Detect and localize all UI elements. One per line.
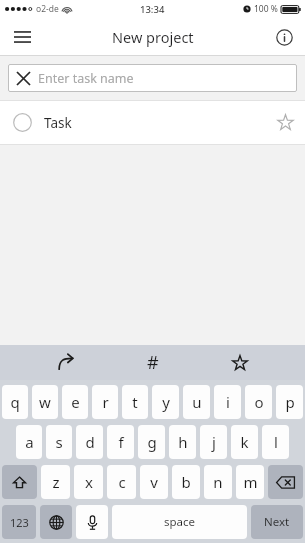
staticText: k — [240, 432, 249, 452]
button[interactable]: i — [214, 385, 241, 419]
button[interactable]: t — [122, 385, 148, 419]
staticText: i — [226, 392, 230, 412]
button[interactable]: u — [183, 385, 210, 419]
staticText: Next — [264, 514, 290, 530]
button[interactable]: d — [76, 425, 103, 459]
staticText: a — [25, 432, 34, 452]
staticText: space — [164, 514, 196, 530]
button[interactable]: Info — [263, 18, 305, 56]
staticText: r — [102, 392, 109, 412]
staticText: p — [285, 392, 295, 412]
button[interactable]: Change keyboard — [40, 505, 72, 539]
button[interactable]: Tag — [109, 345, 196, 380]
button[interactable]: l — [262, 425, 289, 459]
button[interactable]: y — [152, 385, 179, 419]
button[interactable]: e — [62, 385, 88, 419]
staticText: 13:34 — [140, 3, 165, 16]
staticText: n — [213, 472, 223, 492]
staticText: x — [85, 472, 93, 492]
staticText: h — [178, 432, 188, 452]
staticText: s — [55, 432, 63, 452]
staticText: o — [254, 392, 264, 412]
button[interactable]: m — [236, 465, 264, 499]
staticText: b — [181, 472, 191, 492]
staticText: l — [274, 432, 278, 452]
staticText: o2-de — [36, 3, 59, 15]
button[interactable]: Voice input — [76, 505, 108, 539]
staticText: New project — [112, 27, 194, 47]
staticText: d — [85, 432, 95, 452]
button[interactable]: Menu — [0, 18, 44, 56]
staticText: g — [147, 432, 157, 452]
button[interactable]: Backspace — [268, 465, 303, 499]
button[interactable]: n — [204, 465, 232, 499]
button[interactable]: space — [112, 505, 247, 539]
staticText: t — [132, 392, 138, 412]
button[interactable]: o — [245, 385, 272, 419]
button[interactable]: Clear — [8, 64, 297, 92]
button[interactable]: h — [169, 425, 196, 459]
staticText: j — [212, 432, 216, 452]
button[interactable]: Complete task — [0, 101, 305, 144]
button[interactable]: a — [16, 425, 42, 459]
staticText: m — [243, 472, 258, 492]
button[interactable]: 123 — [2, 505, 36, 539]
staticText: v — [150, 472, 158, 492]
button[interactable]: r — [92, 385, 118, 419]
button[interactable]: Indent — [22, 345, 109, 380]
button[interactable]: q — [2, 385, 28, 419]
button[interactable]: v — [140, 465, 168, 499]
staticText: q — [10, 392, 20, 412]
button[interactable]: Next — [251, 505, 303, 539]
other: Complete task — [0, 101, 44, 144]
other: Favourite — [265, 101, 305, 144]
staticText: c — [118, 472, 126, 492]
button[interactable]: Shift — [2, 465, 37, 499]
staticText: e — [71, 392, 80, 412]
button[interactable]: b — [172, 465, 200, 499]
staticText: z — [52, 472, 60, 492]
button[interactable]: g — [138, 425, 165, 459]
staticText: u — [192, 392, 202, 412]
button[interactable]: z — [41, 465, 70, 499]
staticText: Task — [44, 114, 72, 132]
button[interactable]: k — [231, 425, 258, 459]
staticText: Enter task name — [38, 70, 134, 87]
staticText: 123 — [10, 515, 29, 530]
staticText: w — [39, 392, 51, 412]
button[interactable]: x — [74, 465, 103, 499]
button[interactable]: p — [276, 385, 303, 419]
button[interactable]: j — [200, 425, 227, 459]
button[interactable]: s — [46, 425, 72, 459]
staticText: y — [162, 392, 170, 412]
button[interactable]: f — [107, 425, 134, 459]
staticText: f — [118, 432, 124, 452]
button[interactable]: w — [32, 385, 58, 419]
other: Clear — [8, 64, 38, 92]
staticText: # — [147, 350, 159, 375]
button[interactable]: Priority — [196, 345, 283, 380]
staticText: 100 % — [254, 3, 278, 15]
button[interactable]: c — [107, 465, 136, 499]
